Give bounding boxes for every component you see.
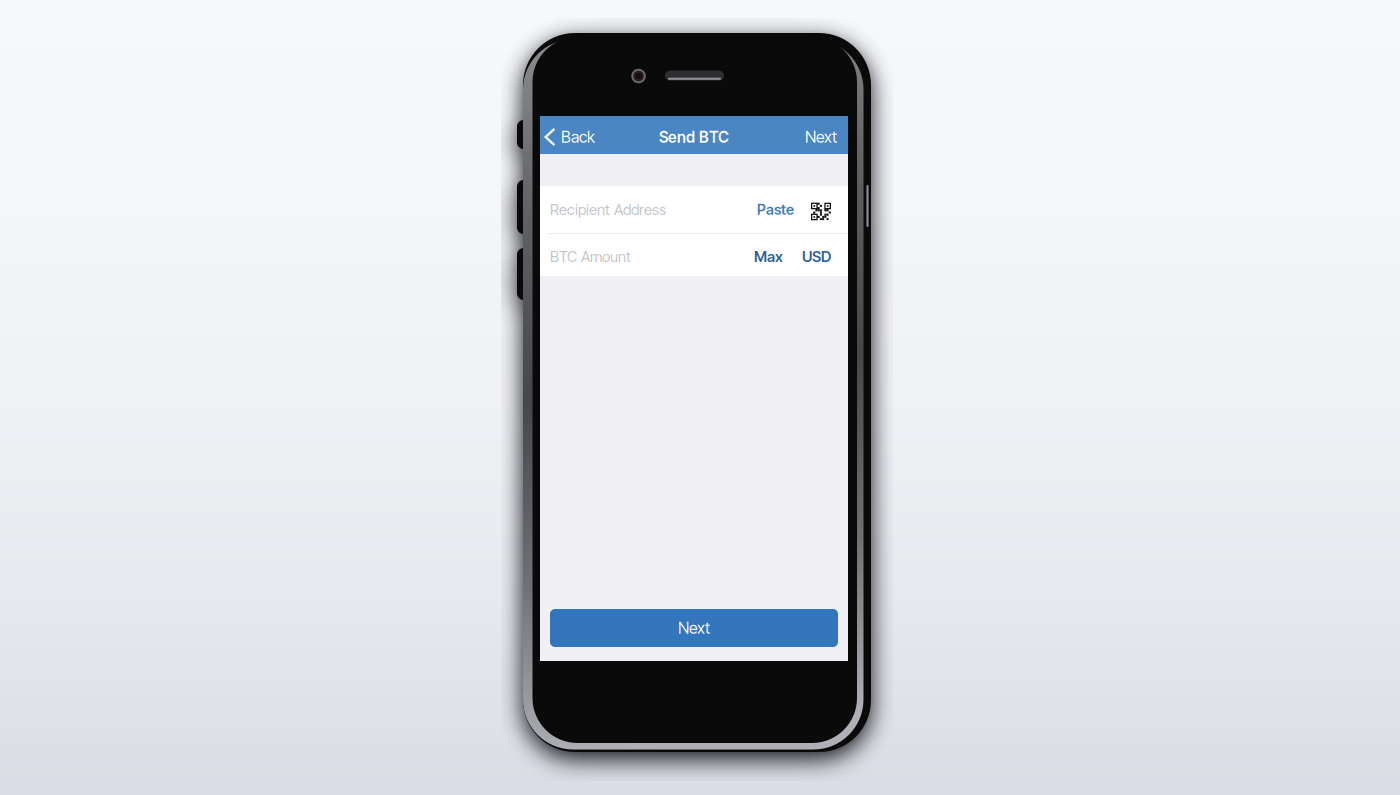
button[interactable]: Paste (751, 186, 800, 233)
button[interactable]: Next (793, 118, 848, 156)
staticText: Paste (757, 201, 794, 218)
staticText: Send BTC (659, 128, 729, 146)
staticText: Next (678, 618, 710, 638)
button[interactable]: Scan QR code (800, 188, 831, 231)
staticText: USD (802, 247, 831, 266)
staticText: Back (561, 127, 595, 147)
staticText: Max (754, 247, 783, 266)
staticText: Recipient Address (550, 200, 666, 219)
staticText: Next (805, 127, 837, 147)
button[interactable]: Next (550, 609, 838, 647)
staticText: BTC Amount (550, 247, 631, 266)
button[interactable]: USD (788, 235, 831, 277)
button[interactable]: Max (749, 235, 788, 277)
button[interactable]: Back (540, 118, 603, 156)
